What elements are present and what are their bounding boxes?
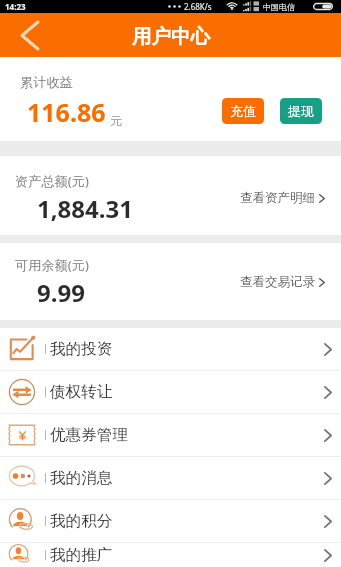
staticText: 1,884.31: [37, 192, 133, 225]
staticText: 查看资产明细: [240, 190, 315, 206]
button[interactable]: 充值: [222, 98, 264, 124]
staticText: 2.68K/s: [184, 1, 212, 12]
staticText: 116.86: [27, 95, 106, 129]
staticText: 我的投资: [50, 339, 113, 359]
button[interactable]: 资产总额(元): [0, 156, 341, 235]
staticText: 我的积分: [50, 511, 113, 531]
button[interactable]: 提现: [280, 98, 322, 124]
button[interactable]: 我的推广: [0, 543, 341, 567]
button[interactable]: 我的消息: [0, 457, 341, 499]
staticText: 元: [110, 113, 122, 128]
staticText: 充值: [230, 103, 256, 119]
staticText: 14:23: [5, 1, 26, 12]
staticText: 9.99: [37, 276, 85, 309]
staticText: 优惠券管理: [50, 425, 128, 445]
button[interactable]: 我的积分: [0, 500, 341, 542]
staticText: 查看交易记录: [240, 274, 315, 290]
button[interactable]: 我的投资: [0, 328, 341, 370]
staticText: 可用余额(元): [15, 256, 89, 274]
staticText: 用户中心: [132, 24, 210, 49]
staticText: 我的消息: [50, 468, 113, 488]
staticText: 我的推广: [50, 545, 113, 565]
button[interactable]: Back: [0, 13, 46, 57]
staticText: 债权转让: [50, 382, 113, 402]
button[interactable]: 债权转让: [0, 371, 341, 413]
staticText: 中国电信: [263, 2, 295, 12]
staticText: 累计收益: [20, 74, 73, 91]
staticText: 提现: [288, 103, 314, 119]
button[interactable]: 优惠券管理: [0, 414, 341, 456]
staticText: 资产总额(元): [15, 172, 89, 190]
button[interactable]: 可用余额(元): [0, 243, 341, 320]
